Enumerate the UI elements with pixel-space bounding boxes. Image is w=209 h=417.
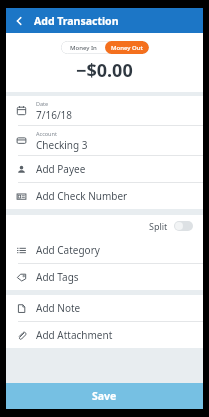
button[interactable]: Back — [6, 8, 31, 33]
staticText: Add Tags — [36, 270, 79, 284]
staticText: Date — [36, 100, 49, 107]
staticText: Save — [92, 389, 117, 403]
staticText: Add Note — [36, 301, 81, 315]
button[interactable]: Save — [6, 383, 203, 409]
staticText: Money Out — [111, 44, 143, 52]
staticText: Account — [36, 130, 57, 137]
staticText: Add Attachment — [36, 328, 113, 342]
button[interactable]: Add Payee — [6, 156, 203, 182]
staticText: Add Category — [36, 243, 100, 257]
staticText: Money In — [70, 44, 97, 52]
button[interactable]: Add Note — [6, 295, 203, 321]
staticText: −$0.00 — [76, 58, 133, 83]
staticText: Add Payee — [36, 162, 86, 176]
staticText: Split — [149, 220, 168, 232]
button[interactable]: Add Category — [6, 237, 203, 263]
button[interactable]: Money Out — [105, 41, 149, 54]
button[interactable]: Add Attachment — [6, 322, 203, 348]
button[interactable]: Add Tags — [6, 264, 203, 290]
button[interactable]: Date — [6, 96, 203, 125]
button[interactable]: Account — [6, 126, 203, 155]
button[interactable]: Split — [6, 215, 203, 237]
staticText: Add Transaction — [34, 14, 119, 28]
staticText: Add Check Number — [36, 189, 128, 203]
button[interactable]: Money In — [61, 41, 105, 54]
staticText: 7/16/18 — [36, 108, 73, 122]
staticText: Checking 3 — [36, 138, 88, 152]
button[interactable]: Add Check Number — [6, 183, 203, 209]
